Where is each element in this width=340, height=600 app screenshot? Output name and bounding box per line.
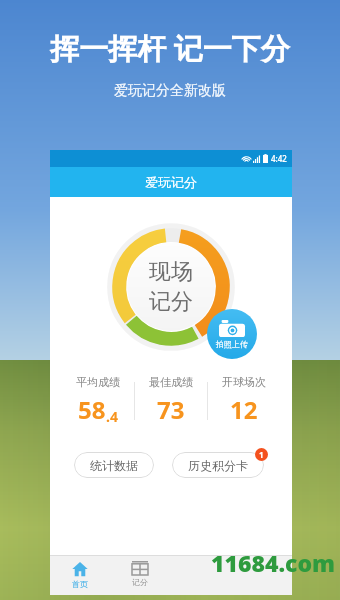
staticText: 统计数据 bbox=[90, 458, 138, 473]
button[interactable]: 拍照上传 bbox=[207, 309, 257, 359]
staticText: 4:42 bbox=[271, 153, 287, 164]
staticText: 爱玩记分 bbox=[145, 174, 197, 190]
staticText: 现场 bbox=[149, 258, 193, 286]
staticText: 最佳成绩 bbox=[149, 375, 193, 389]
staticText: 12 bbox=[230, 393, 258, 426]
staticText: 平均成绩 bbox=[76, 375, 120, 389]
staticText: 1 bbox=[259, 449, 264, 460]
staticText: 记分 bbox=[149, 288, 193, 316]
button[interactable]: 首页 bbox=[50, 556, 110, 595]
button[interactable]: 历史积分卡 bbox=[172, 452, 264, 478]
staticText: 记分 bbox=[132, 577, 148, 587]
staticText: .4 bbox=[106, 407, 118, 426]
staticText: 爱玩记分全新改版 bbox=[114, 82, 226, 100]
button[interactable]: 平均成绩 bbox=[62, 375, 134, 426]
staticText: 拍照上传 bbox=[216, 339, 248, 349]
button[interactable]: 开球场次 bbox=[208, 375, 280, 426]
button[interactable]: 记分 bbox=[110, 556, 170, 595]
staticText: 挥一挥杆 记一下分 bbox=[50, 28, 290, 68]
staticText: 73 bbox=[157, 393, 185, 426]
staticText: 开球场次 bbox=[222, 375, 266, 389]
staticText: 历史积分卡 bbox=[188, 458, 248, 473]
staticText: 58 bbox=[78, 393, 106, 426]
staticText: 11684.com bbox=[211, 547, 336, 578]
button[interactable]: 统计数据 bbox=[74, 452, 154, 478]
staticText: 首页 bbox=[72, 579, 88, 589]
button[interactable]: 最佳成绩 bbox=[135, 375, 207, 426]
